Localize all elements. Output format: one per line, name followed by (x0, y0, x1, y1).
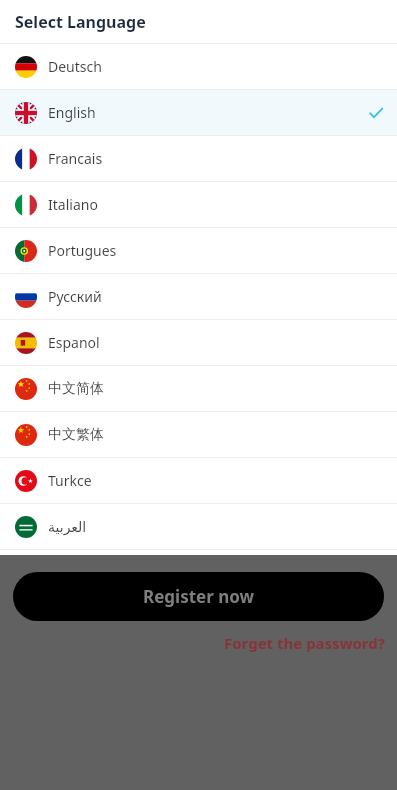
button[interactable]: العربية (0, 504, 397, 549)
button[interactable]: Portugues (0, 228, 397, 273)
button[interactable]: English (0, 90, 397, 135)
staticText: Portugues (48, 241, 117, 260)
staticText: English (48, 103, 96, 122)
button[interactable]: Francais (0, 136, 397, 181)
staticText: Русский (48, 287, 102, 306)
button[interactable]: Italiano (0, 182, 397, 227)
staticText: Turkce (48, 471, 92, 490)
staticText: Select Language (15, 11, 146, 33)
staticText: Deutsch (48, 57, 102, 76)
staticText: Italiano (48, 195, 98, 214)
staticText: 中文简体 (48, 380, 104, 398)
button[interactable]: Русский (0, 274, 397, 319)
button[interactable]: Register now (13, 572, 384, 621)
staticText: العربية (48, 519, 87, 535)
staticText: 中文繁体 (48, 426, 104, 444)
button[interactable]: Deutsch (0, 44, 397, 89)
staticText: Forget the password? (224, 633, 385, 653)
staticText: Register now (143, 585, 255, 608)
button[interactable]: 中文简体 (0, 366, 397, 411)
button[interactable]: Turkce (0, 458, 397, 503)
staticText: Francais (48, 149, 103, 168)
staticText: Espanol (48, 333, 100, 352)
button[interactable]: 中文繁体 (0, 412, 397, 457)
button[interactable]: Forget the password? (212, 630, 397, 656)
button[interactable]: Espanol (0, 320, 397, 365)
other: Selected (369, 106, 383, 120)
